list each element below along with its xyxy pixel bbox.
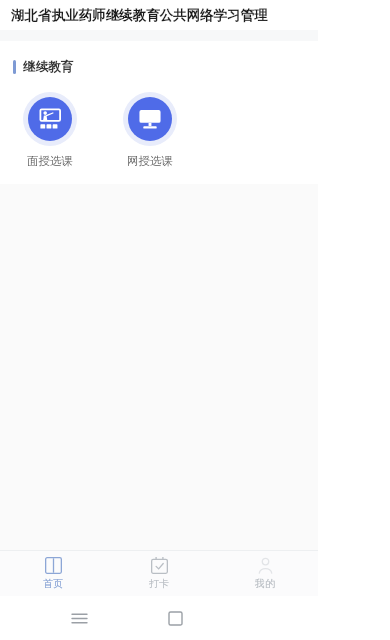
button[interactable]: 面授选课 [0, 90, 100, 170]
staticText: 面授选课 [27, 154, 73, 168]
button[interactable]: Home [158, 601, 192, 635]
button[interactable]: 打卡 [106, 550, 212, 596]
staticText: 继续教育 [23, 59, 73, 75]
button[interactable]: 我的 [212, 550, 318, 596]
button[interactable]: 网授选课 [100, 90, 200, 170]
button[interactable]: Recent apps [62, 601, 96, 635]
staticText: 我的 [255, 577, 275, 590]
staticText: 打卡 [149, 577, 169, 590]
button[interactable]: 首页 [0, 550, 106, 596]
staticText: 湖北省执业药师继续教育公共网络学习管理 [11, 7, 268, 24]
staticText: 首页 [43, 577, 63, 590]
staticText: 网授选课 [127, 154, 173, 168]
